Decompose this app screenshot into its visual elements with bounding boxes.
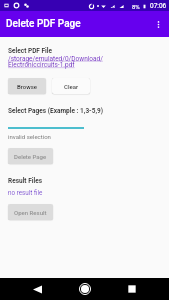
staticText: 07:06 [150, 2, 167, 10]
staticText: 8% [132, 3, 140, 10]
button[interactable]: Recents [121, 278, 143, 300]
staticText: no result file [8, 189, 43, 196]
staticText: Result Files [8, 177, 43, 185]
staticText: Select PDF File [8, 47, 53, 55]
staticText: invalid selection [8, 133, 51, 140]
staticText: Browse [17, 83, 37, 90]
button[interactable]: More options [147, 13, 169, 35]
staticText: Delete Page [14, 153, 47, 160]
button[interactable]: Home [74, 278, 96, 300]
staticText: Open Result [14, 209, 47, 216]
staticText: Clear [64, 83, 79, 90]
staticText: Delete PDF Page [6, 18, 81, 30]
button[interactable]: Back [26, 278, 48, 300]
button[interactable]: Clear [52, 78, 90, 94]
staticText: /storage/emulated/0/Download/ Electronic… [8, 55, 103, 69]
button[interactable]: Delete Page [8, 148, 53, 164]
staticText: Select Pages (Example : 1,3-5,9) [8, 107, 104, 115]
button[interactable]: Browse [8, 78, 46, 94]
button[interactable]: Open Result [8, 204, 53, 220]
